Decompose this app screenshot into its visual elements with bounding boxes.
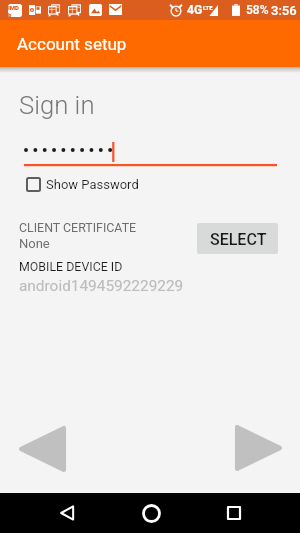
staticText: 58% [246, 3, 269, 17]
staticText: MOBILE DEVICE ID [19, 259, 123, 274]
button[interactable]: Home [131, 499, 171, 527]
staticText: SELECT [210, 230, 267, 249]
staticText: None [19, 236, 50, 251]
button[interactable]: Next [231, 420, 287, 476]
button[interactable]: Previous [14, 420, 70, 476]
staticText: 4G [187, 3, 203, 17]
staticText: Account setup [17, 34, 127, 54]
staticText: IMDb [8, 4, 22, 17]
button[interactable]: SELECT [197, 223, 278, 254]
staticText: Show Password [46, 177, 139, 192]
button[interactable]: Recents [214, 499, 254, 527]
staticText: LTE [203, 4, 213, 11]
staticText: Sign in [19, 90, 95, 120]
button[interactable]: Show Password [26, 173, 139, 196]
staticText: 3:56 [271, 3, 297, 18]
button[interactable]: Back [47, 499, 87, 527]
staticText: android1494592229229 [19, 277, 184, 295]
staticText: CLIENT CERTIFICATE [19, 220, 137, 235]
